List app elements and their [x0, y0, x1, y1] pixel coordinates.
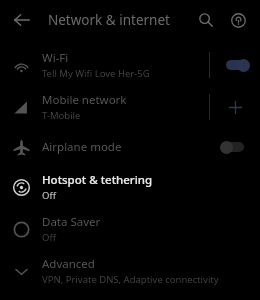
button[interactable]: Toggle on	[210, 44, 260, 86]
staticText: Mobile network	[42, 92, 127, 108]
staticText: Airplane mode	[42, 139, 122, 155]
staticText: Off	[42, 189, 56, 202]
button[interactable]: Wi-Fi	[0, 44, 260, 86]
button[interactable]: Back	[8, 6, 36, 34]
staticText: Advanced	[42, 256, 95, 272]
button[interactable]: Add network	[222, 94, 248, 120]
staticText: Hotspot & tethering	[42, 172, 153, 188]
staticText: T-Mobile	[42, 109, 81, 122]
button[interactable]: Hotspot & tethering	[0, 166, 260, 208]
button[interactable]: Search	[192, 6, 220, 34]
staticText: Network & internet	[48, 11, 170, 29]
button[interactable]: Airplane mode	[0, 128, 260, 166]
staticText: Tell My Wifi Love Her-5G	[42, 67, 150, 80]
button[interactable]: Toggle on	[220, 57, 250, 73]
button[interactable]: Help	[224, 6, 252, 34]
button[interactable]: Toggle off	[220, 139, 250, 155]
staticText: Data Saver	[42, 214, 101, 230]
button[interactable]: Toggle off	[210, 128, 260, 166]
button[interactable]: Mobile network	[0, 86, 260, 128]
button[interactable]: Advanced	[0, 250, 260, 292]
button[interactable]: Add network	[210, 86, 260, 128]
staticText: Wi-Fi	[42, 50, 69, 66]
button[interactable]: Data Saver	[0, 208, 260, 250]
staticText: VPN, Private DNS, Adaptive connectivity	[42, 273, 219, 286]
staticText: Off	[42, 231, 56, 244]
